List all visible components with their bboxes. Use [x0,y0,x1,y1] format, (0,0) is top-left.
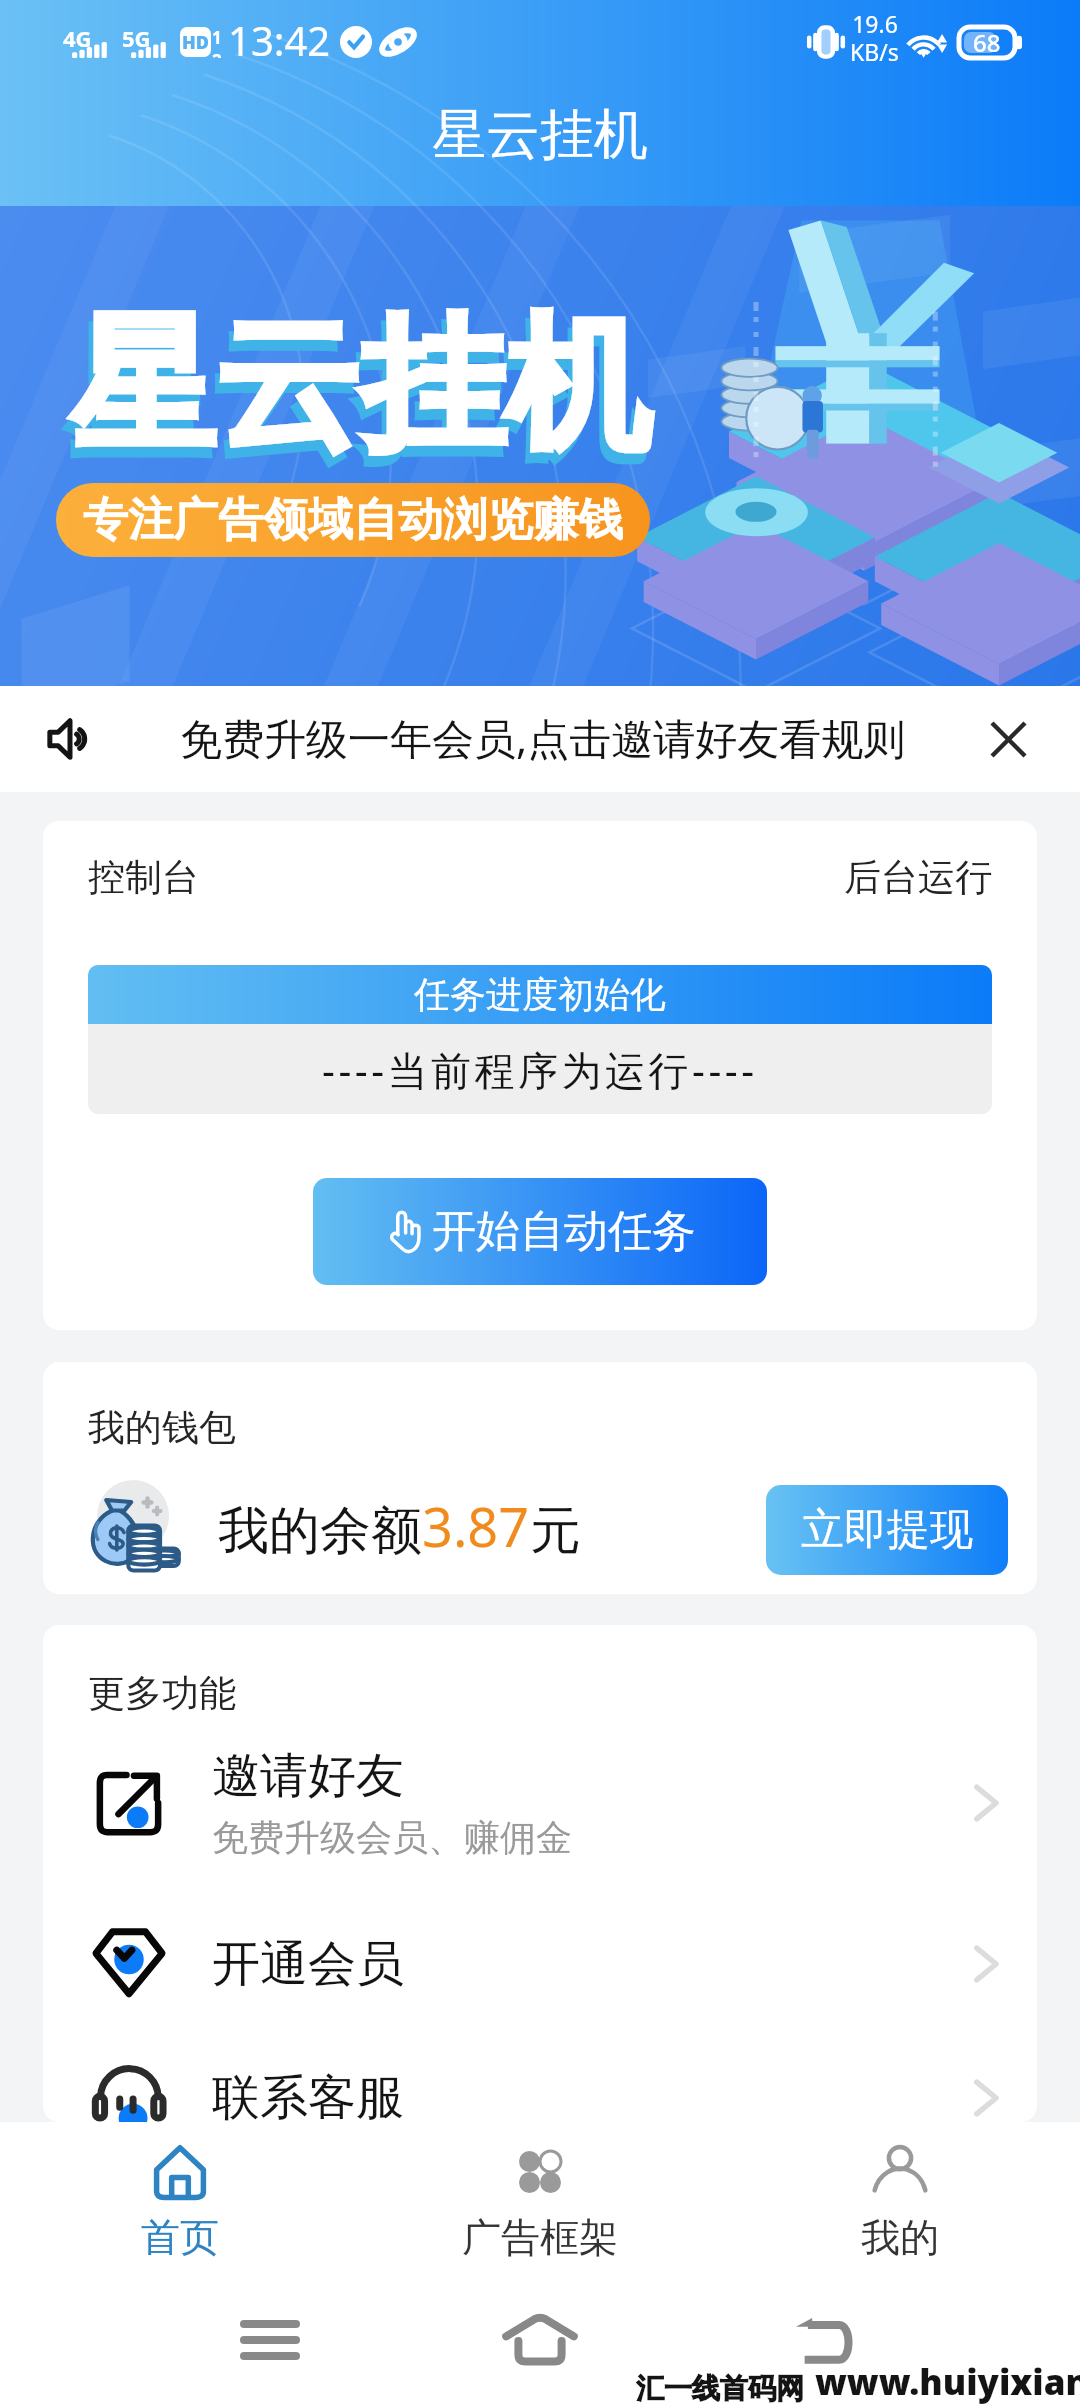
staticText: KB/s [850,36,899,67]
staticText: 星云挂机 [432,101,648,169]
staticText: 立即提现 [801,1503,973,1557]
staticText: 联系客服 [212,2068,404,2122]
staticText: 元 [530,1499,581,1563]
staticText: HD [182,30,209,55]
staticText: 更多功能 [88,1670,236,1717]
staticText: 13:42 [228,13,331,67]
staticText: 汇一线首码网 [636,2371,804,2406]
staticText: 开始自动任务 [432,1204,696,1259]
staticText: 免费升级一年会员,点击邀请好友看规则 [180,709,906,766]
staticText: 开通会员 [212,1934,404,1994]
button[interactable]: Home [495,2308,585,2372]
staticText: 首页 [141,2213,219,2262]
staticText: 广告框架 [462,2213,618,2262]
staticText: 任务进度初始化 [414,972,666,1017]
staticText: 星云挂机 [70,294,650,477]
staticText: 专注广告领域自动浏览赚钱 [83,492,623,549]
staticText: 邀请好友 [212,1746,404,1806]
button[interactable]: 开通会员 [43,1894,1037,2034]
staticText: 免费升级会员、赚佣金 [212,1815,572,1860]
staticText: 控制台 [88,854,199,901]
button[interactable]: 广告框架 [360,2122,720,2262]
staticText: 我的 [861,2213,939,2262]
button[interactable]: 免费升级一年会员,点击邀请好友看规则 [0,686,1080,792]
staticText: 19.6 [852,8,898,39]
staticText: ----当前程序为运行---- [322,1042,758,1097]
staticText: 我的钱包 [88,1404,236,1451]
staticText: 5G [122,23,151,53]
button[interactable]: 立即提现 [766,1485,1008,1575]
staticText: 4G [63,23,92,53]
button[interactable]: Recents [225,2308,315,2372]
button[interactable]: 首页 [0,2122,360,2262]
staticText: 3.87 [422,1489,530,1563]
button[interactable]: Close [980,711,1036,767]
button[interactable]: 邀请好友 [43,1733,1037,1873]
staticText: 星云挂机 [65,305,645,488]
button[interactable]: 开始自动任务 [313,1178,767,1285]
button[interactable]: 我的 [720,2122,1080,2262]
staticText: 68 [973,26,1001,59]
staticText: 1 [212,26,222,49]
button[interactable]: Back [778,2308,868,2372]
staticText: 我的余额 [218,1499,422,1563]
staticText: www.huiyixian.com [815,2358,1080,2406]
button[interactable]: 后台运行 [844,854,992,901]
staticText: 2 [212,49,222,58]
button[interactable]: 联系客服 [43,2028,1037,2122]
